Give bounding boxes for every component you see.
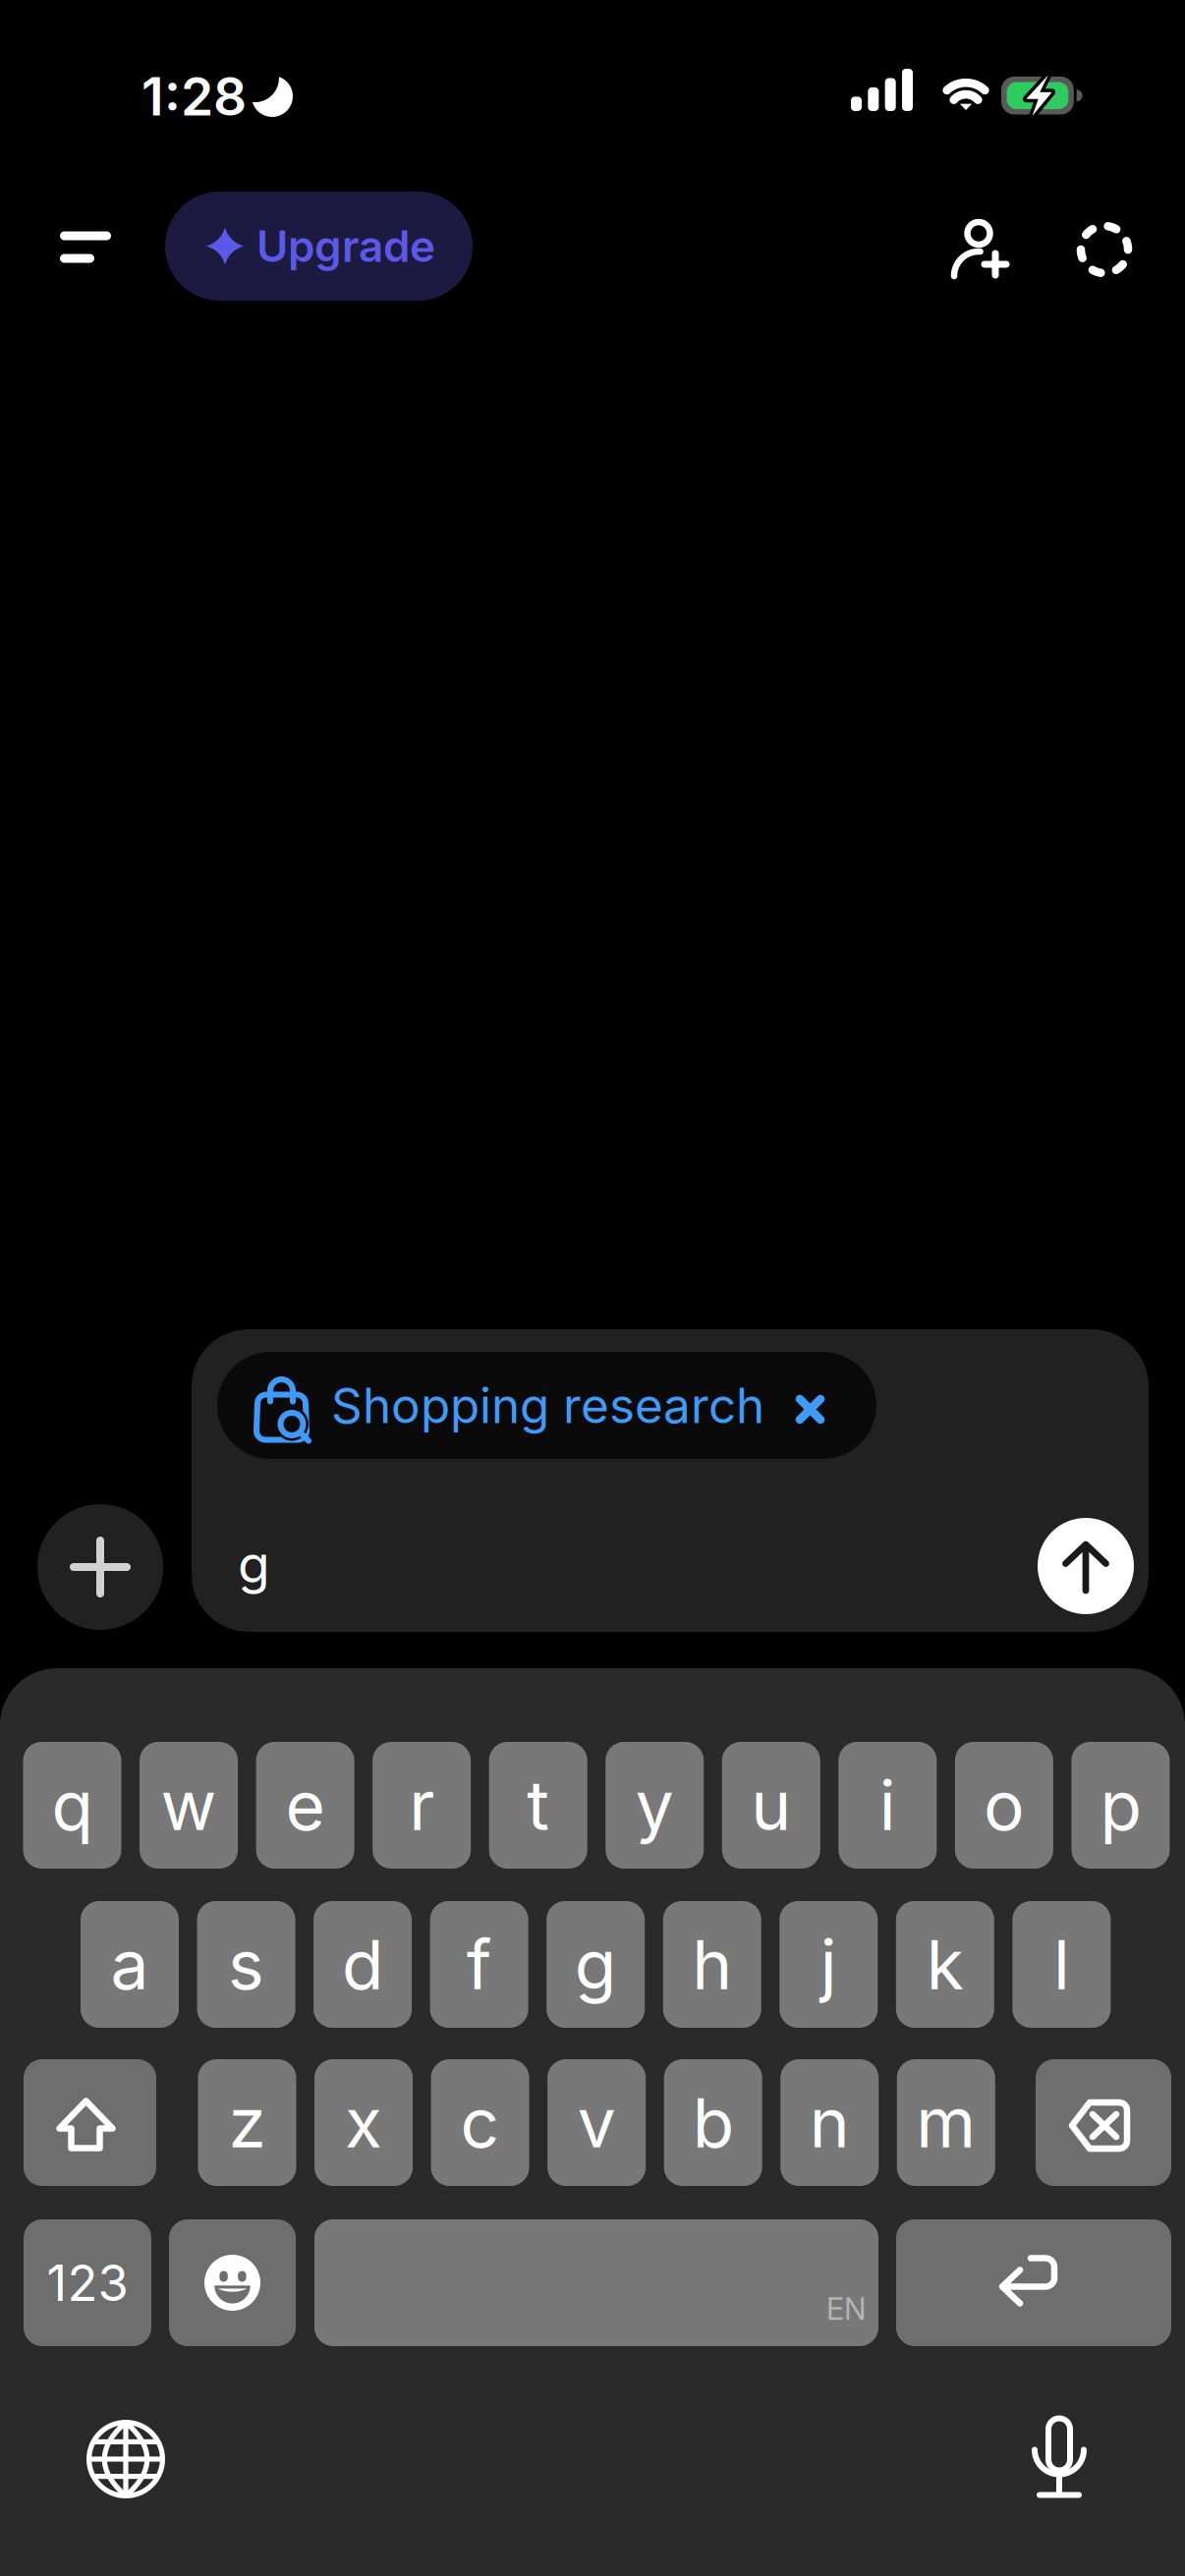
button[interactable]: o (955, 1742, 1053, 1869)
button[interactable]: Add attachment (37, 1504, 163, 1630)
staticText: z (228, 2081, 266, 2164)
staticText: o (983, 1764, 1025, 1847)
staticText: a (111, 1923, 149, 2006)
button[interactable]: Emoji (169, 2219, 296, 2346)
staticText: EN (826, 2290, 866, 2327)
button[interactable]: Menu (31, 182, 140, 290)
button[interactable]: Shopping research (217, 1352, 876, 1459)
button[interactable]: p (1072, 1742, 1170, 1869)
staticText: g (575, 1923, 617, 2006)
button[interactable]: n (780, 2059, 879, 2186)
staticText: p (1100, 1764, 1141, 1847)
staticText: h (692, 1923, 732, 2006)
button[interactable]: Upgrade (165, 192, 473, 301)
button[interactable]: Invite (911, 178, 1009, 280)
staticText: k (926, 1923, 964, 2006)
staticText: Shopping research (331, 1376, 764, 1435)
button[interactable]: s (197, 1901, 295, 2028)
staticText: u (751, 1764, 791, 1847)
staticText: j (820, 1923, 837, 2006)
button[interactable]: a (81, 1901, 179, 2028)
staticText: f (466, 1923, 492, 2006)
button[interactable]: 123 (24, 2219, 151, 2346)
button[interactable]: Shift (24, 2059, 156, 2186)
button[interactable]: r (372, 1742, 471, 1869)
button[interactable]: Return (896, 2219, 1171, 2346)
staticText: c (460, 2081, 500, 2164)
staticText: y (636, 1764, 674, 1847)
staticText: i (879, 1764, 896, 1847)
button[interactable]: g (547, 1901, 645, 2028)
button[interactable]: e (256, 1742, 354, 1869)
button[interactable]: i (839, 1742, 937, 1869)
staticText: e (286, 1764, 325, 1847)
staticText: g (238, 1532, 270, 1596)
button[interactable]: q (23, 1742, 121, 1869)
button[interactable]: h (663, 1901, 761, 2028)
button[interactable]: Dictate (1005, 2403, 1113, 2511)
button[interactable]: Send (1038, 1518, 1134, 1614)
staticText: b (692, 2081, 734, 2164)
staticText: t (527, 1764, 549, 1847)
staticText: l (1053, 1923, 1070, 2006)
button[interactable]: u (722, 1742, 820, 1869)
button[interactable]: b (664, 2059, 762, 2186)
button[interactable]: l (1012, 1901, 1111, 2028)
button[interactable]: m (897, 2059, 995, 2186)
button[interactable]: d (314, 1901, 412, 2028)
staticText: x (345, 2081, 382, 2164)
staticText: d (342, 1923, 383, 2006)
button[interactable]: x (315, 2059, 413, 2186)
staticText: 123 (47, 2253, 128, 2313)
button[interactable]: w (140, 1742, 238, 1869)
button[interactable]: Temporary chat (1022, 173, 1130, 275)
staticText: w (161, 1764, 217, 1847)
button[interactable]: Delete (1036, 2059, 1171, 2186)
staticText: r (409, 1764, 434, 1847)
staticText: q (52, 1764, 93, 1847)
button[interactable]: Next keyboard (72, 2405, 180, 2513)
staticText: s (228, 1923, 264, 2006)
button[interactable]: j (779, 1901, 878, 2028)
staticText: n (809, 2081, 850, 2164)
button[interactable]: c (431, 2059, 529, 2186)
button[interactable]: f (430, 1901, 528, 2028)
staticText: 1:28 (141, 65, 247, 128)
button[interactable]: k (896, 1901, 994, 2028)
button[interactable]: y (605, 1742, 704, 1869)
staticText: m (916, 2081, 976, 2164)
staticText: v (577, 2081, 616, 2164)
button[interactable]: Space (314, 2219, 878, 2346)
button[interactable]: v (547, 2059, 646, 2186)
button[interactable]: z (198, 2059, 296, 2186)
button[interactable]: t (489, 1742, 587, 1869)
staticText: Upgrade (256, 220, 435, 272)
